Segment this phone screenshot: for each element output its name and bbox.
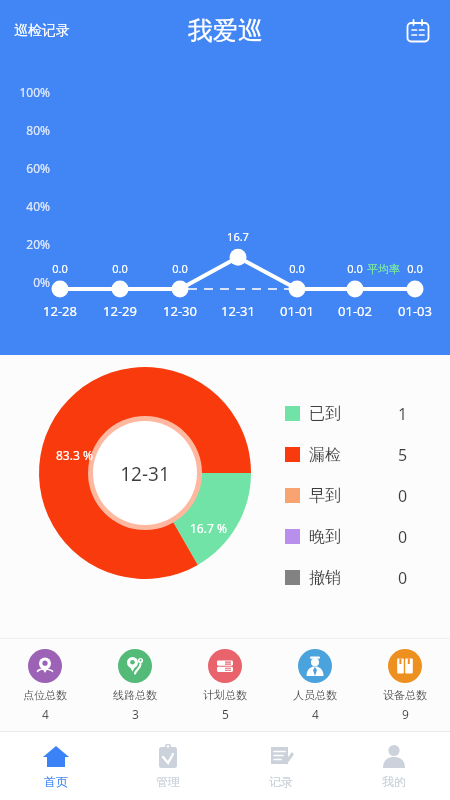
- staticText: 点位总数: [23, 688, 67, 702]
- staticText: 设备总数: [383, 688, 427, 702]
- button[interactable]: 计划总数: [180, 647, 270, 724]
- staticText: 12-28: [35, 302, 85, 320]
- staticText: 01-03: [390, 302, 440, 320]
- staticText: 早到: [309, 486, 341, 506]
- staticText: 3: [132, 706, 139, 722]
- staticText: 100%: [0, 84, 50, 100]
- button[interactable]: 早到: [285, 475, 430, 516]
- staticText: 1: [398, 403, 408, 425]
- staticText: 12-30: [155, 302, 205, 320]
- staticText: 平均率: [367, 262, 400, 276]
- staticText: 巡检记录: [14, 22, 70, 40]
- button[interactable]: 首页: [0, 732, 112, 800]
- button[interactable]: 漏检: [285, 434, 430, 475]
- staticText: 0: [398, 485, 408, 507]
- staticText: 16.7 %: [190, 520, 227, 536]
- staticText: 0.0: [337, 261, 373, 276]
- staticText: 0.0: [42, 261, 78, 276]
- staticText: 已到: [309, 404, 341, 424]
- button[interactable]: 点位总数: [0, 647, 90, 724]
- staticText: 16.7: [220, 229, 256, 244]
- staticText: 01-01: [272, 302, 322, 320]
- staticText: 5: [398, 444, 408, 466]
- staticText: 80%: [0, 122, 50, 138]
- staticText: 12-29: [95, 302, 145, 320]
- staticText: 记录: [269, 774, 293, 789]
- staticText: 我的: [382, 774, 406, 789]
- staticText: 0.0: [397, 261, 433, 276]
- staticText: 01-02: [330, 302, 380, 320]
- staticText: 计划总数: [203, 688, 247, 702]
- staticText: 12-31: [213, 302, 263, 320]
- staticText: 晚到: [309, 527, 341, 547]
- button[interactable]: 我的: [337, 732, 450, 800]
- staticText: 0.0: [162, 261, 198, 276]
- staticText: 0%: [0, 274, 50, 290]
- button[interactable]: 撤销: [285, 557, 430, 598]
- staticText: 人员总数: [293, 688, 337, 702]
- staticText: 漏检: [309, 445, 341, 465]
- staticText: 0: [398, 567, 408, 589]
- staticText: 0.0: [102, 261, 138, 276]
- staticText: 撤销: [309, 568, 341, 588]
- button[interactable]: 晚到: [285, 516, 430, 557]
- staticText: 9: [402, 706, 409, 722]
- staticText: 4: [42, 706, 49, 722]
- staticText: 0: [398, 526, 408, 548]
- button[interactable]: 设备总数: [360, 647, 450, 724]
- staticText: 我爱巡: [188, 15, 263, 46]
- staticText: 60%: [0, 160, 50, 176]
- button[interactable]: 巡检记录: [10, 18, 74, 44]
- staticText: 83.3 %: [56, 447, 93, 463]
- staticText: 5: [222, 706, 229, 722]
- staticText: 管理: [156, 774, 180, 789]
- staticText: 线路总数: [113, 688, 157, 702]
- button[interactable]: 已到: [285, 393, 430, 434]
- staticText: 4: [312, 706, 319, 722]
- button[interactable]: 管理: [112, 732, 224, 800]
- button[interactable]: 日历记录: [400, 13, 436, 49]
- button[interactable]: 记录: [224, 732, 337, 800]
- button[interactable]: 人员总数: [270, 647, 360, 724]
- staticText: 首页: [44, 774, 68, 789]
- staticText: 20%: [0, 236, 50, 252]
- staticText: 0.0: [279, 261, 315, 276]
- staticText: 40%: [0, 198, 50, 214]
- button[interactable]: 线路总数: [90, 647, 180, 724]
- staticText: 12-31: [113, 461, 177, 487]
